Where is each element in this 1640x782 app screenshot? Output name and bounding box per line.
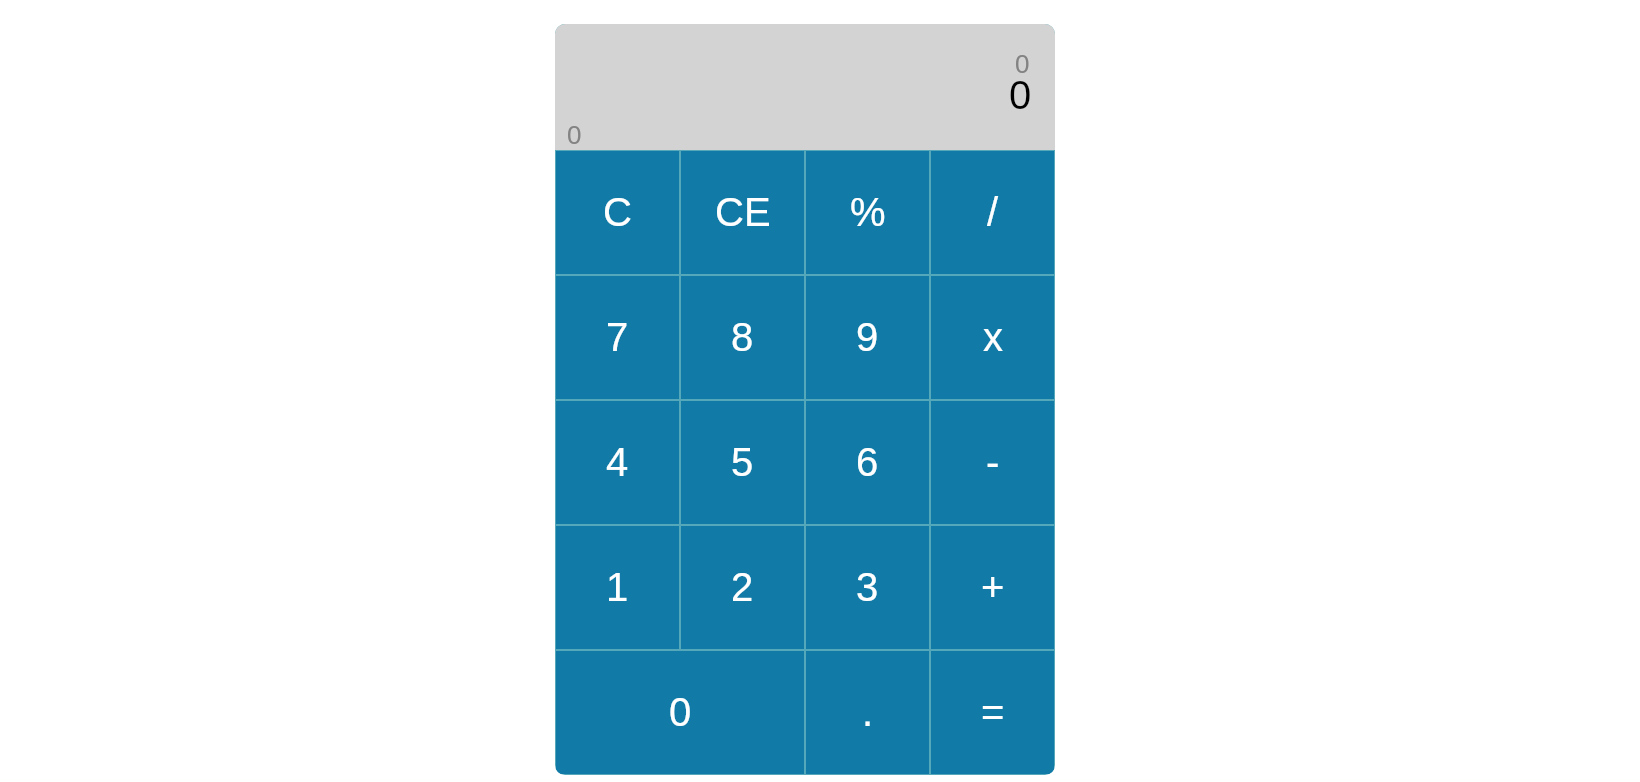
- staticText: x: [983, 315, 1003, 360]
- staticText: /: [987, 190, 999, 235]
- staticText: 3: [856, 565, 879, 610]
- button[interactable]: Six: [806, 401, 929, 524]
- staticText: 2: [731, 565, 754, 610]
- button[interactable]: Equals: [931, 651, 1054, 774]
- staticText: 0: [567, 120, 582, 149]
- button[interactable]: Seven: [556, 276, 679, 399]
- button[interactable]: Two: [681, 526, 804, 649]
- button[interactable]: Eight: [681, 276, 804, 399]
- staticText: 6: [856, 440, 879, 485]
- button[interactable]: Nine: [806, 276, 929, 399]
- staticText: 5: [731, 440, 754, 485]
- button[interactable]: Three: [806, 526, 929, 649]
- button[interactable]: Minus: [931, 401, 1054, 524]
- staticText: +: [981, 565, 1005, 610]
- staticText: C: [603, 190, 632, 235]
- button[interactable]: Clear entry: [681, 151, 804, 274]
- staticText: 8: [731, 315, 754, 360]
- button[interactable]: Divide: [931, 151, 1054, 274]
- staticText: 0: [669, 690, 692, 735]
- button[interactable]: Zero: [556, 651, 804, 774]
- staticText: -: [986, 440, 1000, 485]
- button[interactable]: Decimal point: [806, 651, 929, 774]
- button[interactable]: Clear: [556, 151, 679, 274]
- button[interactable]: Percent: [806, 151, 929, 274]
- button[interactable]: Four: [556, 401, 679, 524]
- button[interactable]: One: [556, 526, 679, 649]
- staticText: .: [862, 690, 874, 735]
- staticText: 0: [1015, 49, 1030, 78]
- staticText: 4: [606, 440, 629, 485]
- staticText: %: [850, 190, 886, 235]
- button[interactable]: Multiply: [931, 276, 1054, 399]
- staticText: 7: [606, 315, 629, 360]
- staticText: =: [981, 690, 1005, 735]
- staticText: CE: [715, 190, 771, 235]
- button[interactable]: Plus: [931, 526, 1054, 649]
- staticText: 9: [856, 315, 879, 360]
- button[interactable]: Five: [681, 401, 804, 524]
- staticText: 1: [606, 565, 629, 610]
- staticText: 0: [1009, 73, 1032, 118]
